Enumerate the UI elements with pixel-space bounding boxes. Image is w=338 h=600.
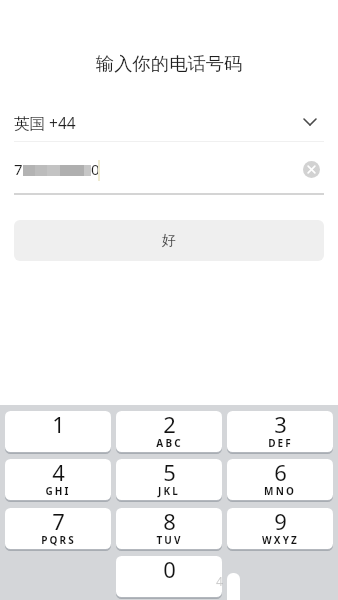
button[interactable]: 6 xyxy=(227,459,333,500)
button[interactable]: 4 xyxy=(5,459,111,500)
button[interactable]: 3 xyxy=(227,411,333,452)
staticText: TUV xyxy=(156,533,183,547)
staticText: 7 xyxy=(52,508,65,536)
button[interactable]: 5 xyxy=(116,459,222,500)
button[interactable]: 7 xyxy=(5,508,111,549)
staticText: 6 xyxy=(274,459,287,487)
button[interactable]: 好 xyxy=(14,220,324,261)
button[interactable]: 1 xyxy=(5,411,111,452)
staticText: 1 xyxy=(52,411,65,439)
button[interactable]: Clear text xyxy=(300,158,322,180)
staticText: WXYZ xyxy=(262,533,299,547)
staticText: 4 xyxy=(52,459,65,487)
staticText: 9 xyxy=(274,508,287,536)
staticText: 输入你的电话号码 xyxy=(96,52,243,75)
staticText: JKL xyxy=(158,484,180,498)
staticText: MNO xyxy=(264,484,296,498)
staticText: 7 xyxy=(14,159,23,179)
staticText: DEF xyxy=(268,436,293,450)
staticText: 0 xyxy=(91,159,100,179)
staticText: ABC xyxy=(156,436,183,450)
button[interactable]: 英国 +44 xyxy=(0,104,338,141)
staticText: 英国 +44 xyxy=(14,112,76,133)
staticText: PQRS xyxy=(41,533,76,547)
staticText: 5 xyxy=(163,459,176,487)
staticText: GHI xyxy=(45,484,71,498)
staticText: 4 xyxy=(216,573,223,589)
staticText: 3 xyxy=(274,411,287,439)
button[interactable]: 8 xyxy=(116,508,222,549)
staticText: 8 xyxy=(163,508,176,536)
staticText: 好 xyxy=(162,232,176,250)
staticText: 2 xyxy=(163,411,176,439)
button[interactable]: 9 xyxy=(227,508,333,549)
button[interactable]: 0 xyxy=(116,556,222,597)
button[interactable]: 2 xyxy=(116,411,222,452)
staticText: 0 xyxy=(163,556,176,584)
